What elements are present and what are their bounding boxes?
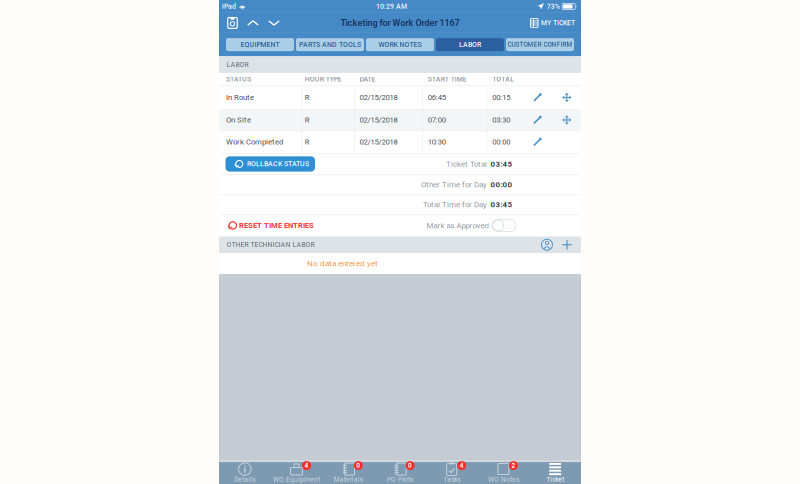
staticText: 73% <box>547 2 560 10</box>
staticText: EQUIPMENT <box>240 41 279 49</box>
button[interactable]: 4 <box>426 462 478 484</box>
staticText: 03:45 <box>490 159 512 168</box>
staticText: 0 <box>356 462 360 469</box>
staticText: 03:45 <box>490 200 512 209</box>
staticText: WO Equipment <box>273 476 320 483</box>
staticText: 07:00 <box>428 115 446 124</box>
staticText: Ticket <box>546 476 564 483</box>
staticText: No data entered yet <box>307 259 378 268</box>
staticText: 2 <box>511 462 515 469</box>
staticText: Other Time for Day <box>421 180 487 189</box>
staticText: R <box>305 137 310 146</box>
button[interactable]: RESET TIME ENTRIES <box>228 215 314 236</box>
staticText: iPad <box>222 2 236 10</box>
staticText: WORK NOTES <box>378 41 421 49</box>
staticText: Total Time for Day <box>423 200 487 209</box>
staticText: Ticket Total <box>446 159 487 168</box>
button[interactable]: Mark as Approved <box>492 219 516 231</box>
staticText: LABOR <box>226 61 248 69</box>
button[interactable]: PARTS AND TOOLS <box>296 38 364 51</box>
button[interactable]: CUSTOMER CONFIRM <box>506 38 574 51</box>
staticText: Work Completed <box>226 137 283 146</box>
staticText: R <box>305 115 310 124</box>
button[interactable]: Add technician labor <box>559 237 575 253</box>
staticText: R <box>305 93 310 102</box>
button[interactable]: Ticket <box>529 462 581 484</box>
staticText: MY TICKET <box>541 19 575 27</box>
staticText: TOTAL <box>492 75 514 83</box>
staticText: HOUR TYPE <box>305 75 342 83</box>
staticText: Details <box>234 476 255 483</box>
staticText: 06:45 <box>428 93 446 102</box>
button[interactable]: Reorder time entry <box>556 85 578 109</box>
button[interactable]: ROLLBACK STATUS <box>225 156 315 172</box>
button[interactable]: MY TICKET <box>530 13 575 33</box>
staticText: PARTS AND TOOLS <box>299 41 361 49</box>
button[interactable]: Ticket list <box>224 13 241 33</box>
button[interactable]: WORK NOTES <box>366 38 434 51</box>
button[interactable]: Previous work order <box>244 13 262 33</box>
staticText: 0 <box>408 462 412 469</box>
staticText: 03:30 <box>492 115 510 124</box>
staticText: WO Notes <box>488 476 519 483</box>
staticText: Tasks <box>443 476 460 483</box>
button[interactable]: LABOR <box>436 38 504 51</box>
button[interactable]: Reorder time entry <box>556 109 578 130</box>
button[interactable]: 0 <box>374 462 426 484</box>
staticText: In Route <box>226 93 254 102</box>
staticText: 4 <box>305 462 309 469</box>
staticText: 00:00 <box>492 137 510 146</box>
button[interactable]: Edit time entry <box>526 130 548 153</box>
button[interactable]: Details <box>219 462 271 484</box>
button[interactable]: 0 <box>322 462 374 484</box>
button[interactable]: Edit time entry <box>526 85 548 109</box>
staticText: 10:29 AM <box>376 2 407 10</box>
staticText: 4 <box>460 462 464 469</box>
staticText: DATE <box>360 75 376 83</box>
button[interactable]: 4 <box>271 462 322 484</box>
staticText: On Site <box>226 115 251 124</box>
button[interactable]: 2 <box>478 462 529 484</box>
staticText: 02/15/2018 <box>360 115 398 124</box>
staticText: RESET TIME ENTRIES <box>239 221 314 230</box>
staticText: 02/15/2018 <box>360 93 398 102</box>
staticText: Ticketing for Work Order 1167 <box>340 18 459 28</box>
button[interactable]: Next work order <box>265 13 283 33</box>
staticText: Materials <box>334 476 363 483</box>
button[interactable]: EQUIPMENT <box>226 38 294 51</box>
staticText: START TIME <box>428 75 467 83</box>
staticText: PO Parts <box>387 476 413 483</box>
staticText: CUSTOMER CONFIRM <box>507 41 572 48</box>
staticText: Mark as Approved <box>426 221 488 230</box>
staticText: 02/15/2018 <box>360 137 398 146</box>
button[interactable]: Edit time entry <box>526 109 548 130</box>
staticText: 10:30 <box>428 137 446 146</box>
staticText: 00:15 <box>492 93 510 102</box>
staticText: LABOR <box>459 41 481 49</box>
staticText: 00:00 <box>490 180 512 189</box>
button[interactable]: Select technician <box>538 237 556 253</box>
staticText: ROLLBACK STATUS <box>247 160 309 168</box>
staticText: OTHER TECHNICIAN LABOR <box>226 241 314 249</box>
staticText: STATUS <box>226 75 251 83</box>
